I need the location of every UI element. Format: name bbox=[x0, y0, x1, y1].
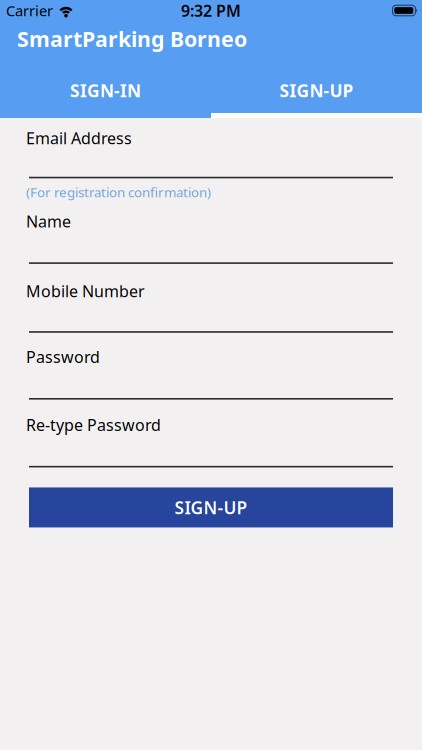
staticText: Password bbox=[26, 346, 100, 367]
secureTextField[interactable] bbox=[29, 435, 393, 466]
staticText: Name bbox=[26, 211, 71, 232]
button[interactable]: SIGN-UP bbox=[211, 73, 422, 108]
staticText: (For registration confirmation) bbox=[26, 183, 211, 201]
staticText: SIGN-UP bbox=[174, 496, 247, 519]
staticText: Re-type Password bbox=[26, 414, 161, 435]
staticText: Carrier bbox=[6, 1, 53, 20]
staticText: SIGN-UP bbox=[279, 79, 353, 102]
button[interactable]: SIGN-IN bbox=[0, 73, 211, 108]
button[interactable]: SIGN-UP bbox=[29, 487, 393, 527]
staticText: Email Address bbox=[26, 127, 132, 149]
staticText: 9:32 PM bbox=[181, 0, 241, 21]
staticText: SIGN-IN bbox=[70, 79, 141, 102]
textField[interactable] bbox=[29, 148, 393, 178]
staticText: SmartParking Borneo bbox=[17, 24, 247, 53]
staticText: Mobile Number bbox=[26, 280, 145, 302]
